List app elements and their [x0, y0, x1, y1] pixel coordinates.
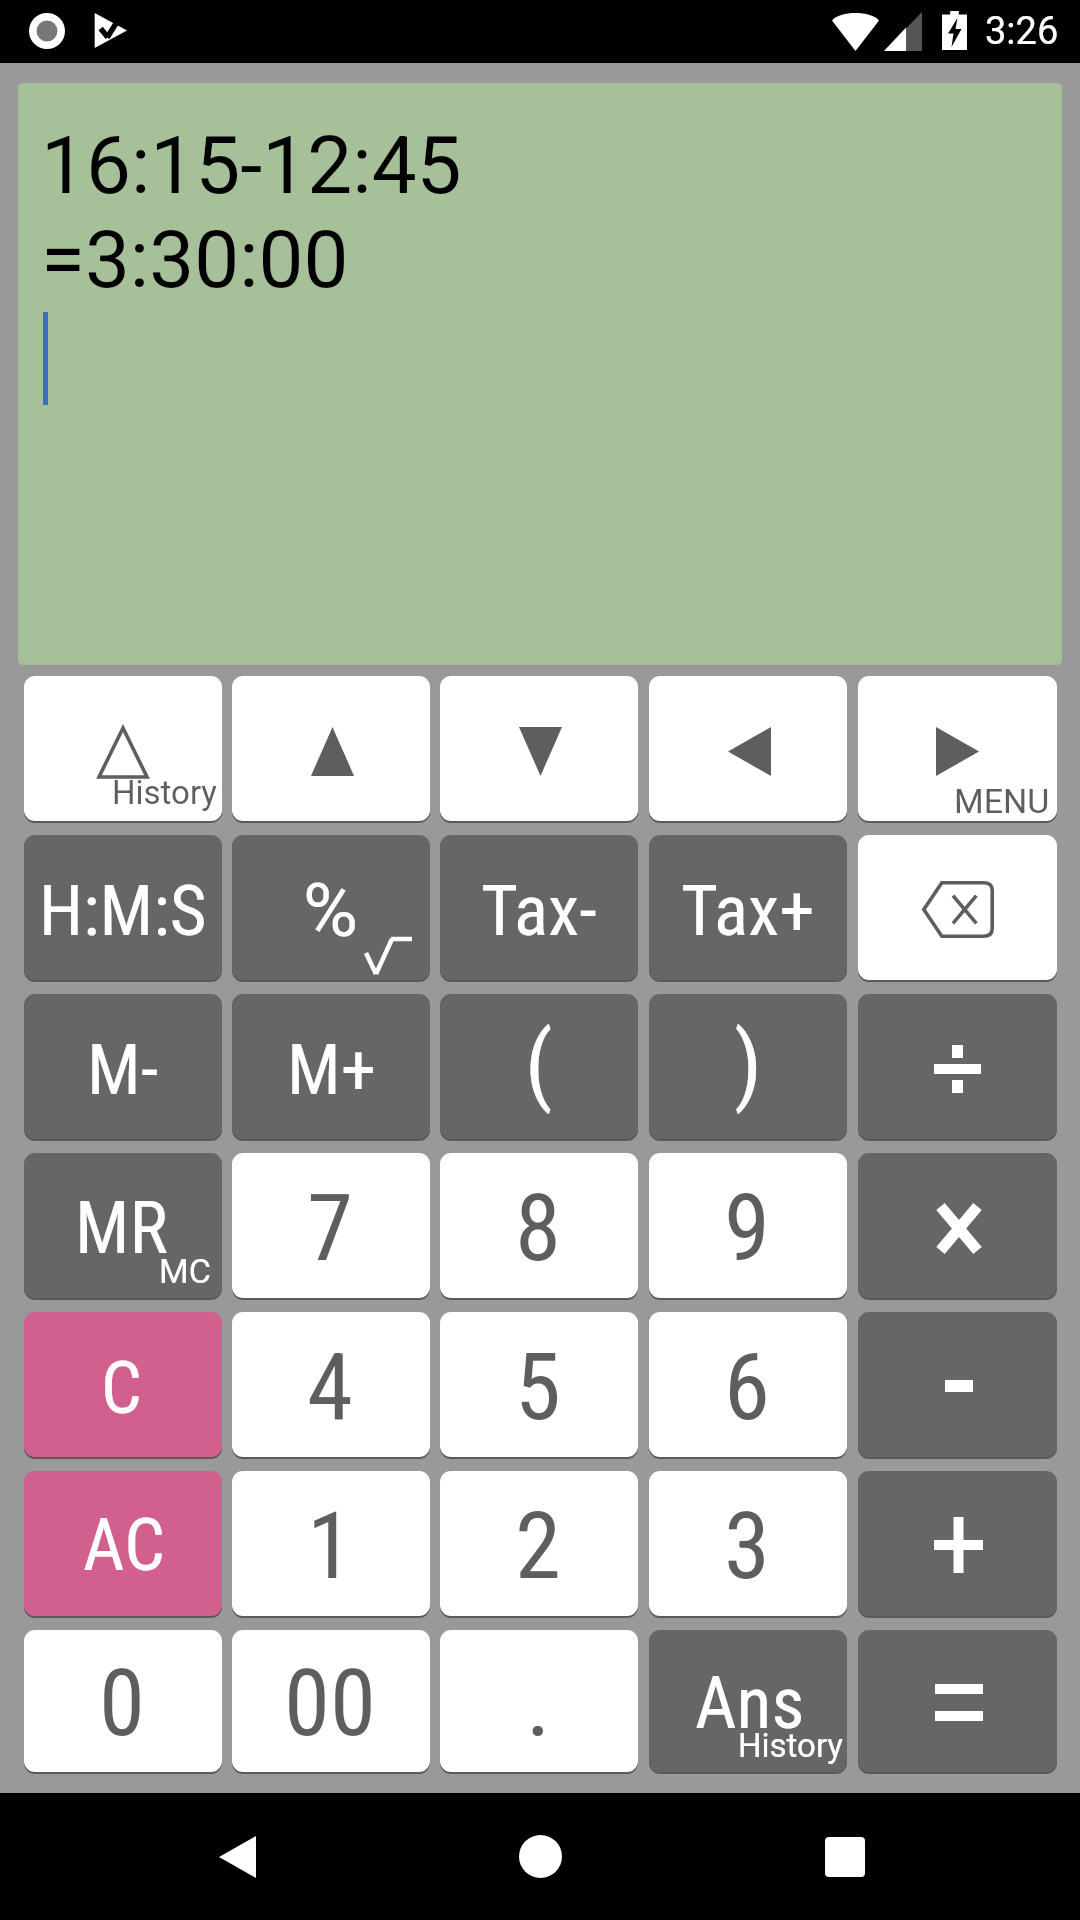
staticText: Ans	[695, 1661, 805, 1745]
button[interactable]: Down	[440, 675, 638, 822]
button[interactable]: Left	[649, 675, 847, 822]
button[interactable]: M+	[232, 993, 430, 1140]
button[interactable]: Up	[232, 675, 430, 822]
staticText: M+	[287, 1028, 376, 1111]
button[interactable]: Divide	[858, 993, 1057, 1140]
staticText: 8	[515, 1174, 561, 1283]
staticText: 6	[724, 1333, 770, 1442]
button[interactable]: Recents	[720, 1793, 1080, 1920]
button[interactable]: Menu	[858, 675, 1057, 822]
staticText: 9	[724, 1174, 770, 1283]
staticText: .	[526, 1649, 551, 1758]
button[interactable]: M-	[24, 993, 222, 1140]
button[interactable]: MR	[24, 1152, 222, 1299]
button[interactable]: 2	[440, 1470, 638, 1617]
button[interactable]: AC	[24, 1470, 222, 1617]
staticText: 3	[724, 1492, 770, 1601]
button[interactable]: 5	[440, 1311, 638, 1458]
staticText: 0	[99, 1649, 145, 1758]
button[interactable]: Ans	[649, 1629, 847, 1773]
button[interactable]: 4	[232, 1311, 430, 1458]
staticText: 4	[307, 1333, 353, 1442]
button[interactable]: 8	[440, 1152, 638, 1299]
staticText: H:M:S	[39, 869, 207, 952]
staticText: 3:26	[985, 9, 1059, 54]
staticText: 5	[515, 1333, 561, 1442]
button[interactable]: 1	[232, 1470, 430, 1617]
staticText: 2	[515, 1492, 561, 1601]
button[interactable]: %	[232, 834, 430, 981]
staticText: =3:30:00	[41, 213, 349, 307]
staticText: Tax-	[481, 869, 597, 952]
staticText: History	[112, 773, 217, 812]
staticText: (	[525, 1012, 553, 1115]
staticText: Tax+	[681, 869, 815, 952]
button[interactable]: History	[24, 675, 222, 822]
staticText: C	[101, 1346, 142, 1430]
button[interactable]: .	[440, 1629, 638, 1773]
button[interactable]: )	[649, 993, 847, 1140]
staticText: AC	[83, 1503, 165, 1587]
button[interactable]: Backspace	[858, 834, 1057, 981]
staticText: MR	[75, 1186, 168, 1270]
button[interactable]: Tax-	[440, 834, 638, 981]
staticText: 1	[307, 1492, 353, 1601]
staticText: M-	[87, 1028, 159, 1111]
staticText: )	[734, 1012, 763, 1115]
button[interactable]: 9	[649, 1152, 847, 1299]
button[interactable]: Plus	[858, 1470, 1057, 1617]
button[interactable]: Multiply	[858, 1152, 1057, 1299]
button[interactable]: Equals	[858, 1629, 1057, 1773]
button[interactable]: H:M:S	[24, 834, 222, 981]
button[interactable]: 7	[232, 1152, 430, 1299]
button[interactable]: Tax+	[649, 834, 847, 981]
button[interactable]: 3	[649, 1470, 847, 1617]
button[interactable]: C	[24, 1311, 222, 1458]
staticText: History	[738, 1726, 843, 1765]
button[interactable]: Minus	[858, 1311, 1057, 1458]
button[interactable]: Home	[360, 1793, 720, 1920]
button[interactable]: (	[440, 993, 638, 1140]
staticText: %	[303, 866, 358, 954]
staticText: 16:15-12:45	[41, 119, 462, 213]
staticText: MENU	[954, 781, 1050, 821]
button[interactable]: 00	[232, 1629, 430, 1773]
staticText: 00	[284, 1649, 376, 1758]
button[interactable]: 0	[24, 1629, 222, 1773]
button[interactable]: 6	[649, 1311, 847, 1458]
staticText: 7	[307, 1174, 353, 1283]
button[interactable]: Back	[0, 1793, 360, 1920]
staticText: MC	[159, 1251, 211, 1291]
